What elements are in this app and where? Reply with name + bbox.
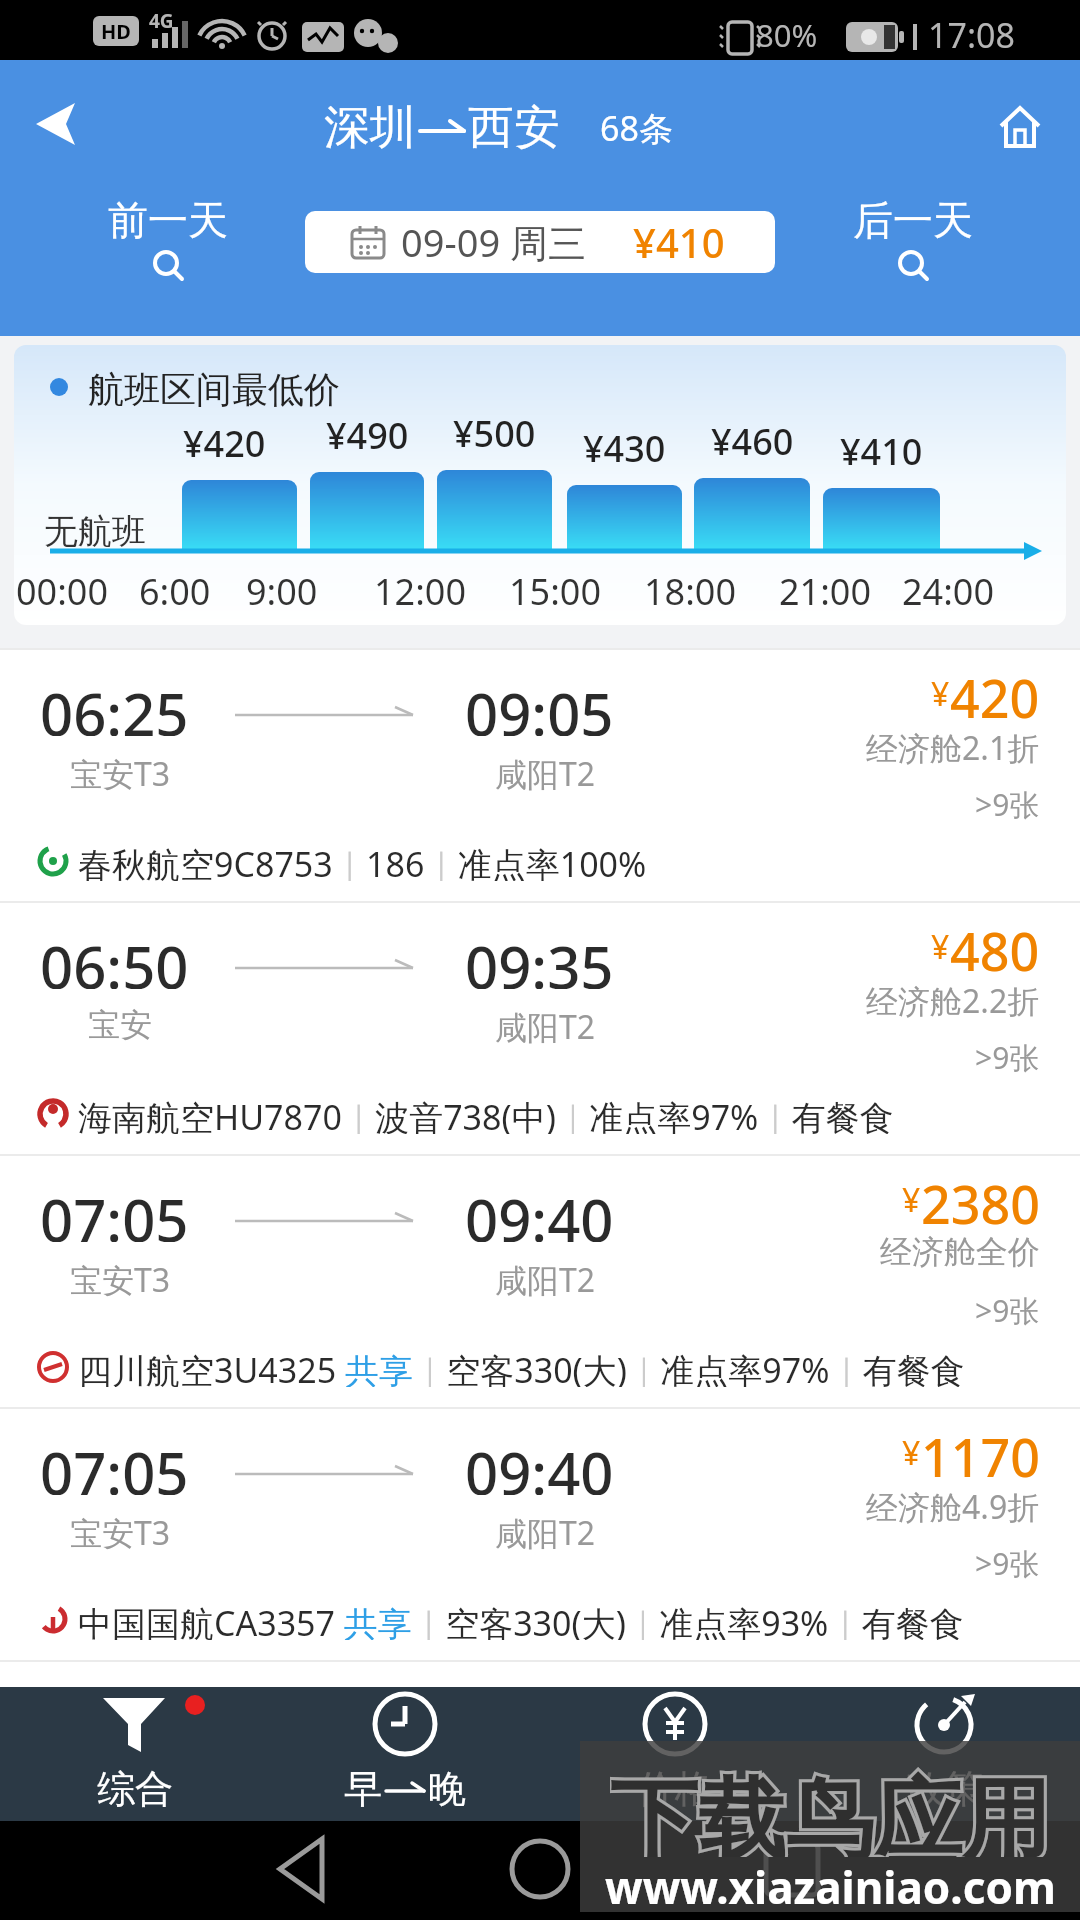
staticText: 咸阳T2 — [495, 1005, 596, 1045]
button[interactable]: 前一天 — [80, 195, 255, 305]
button[interactable] — [995, 100, 1055, 156]
staticText: 24:00 — [902, 567, 995, 607]
staticText: 春秋航空9C8753｜186｜准点率100% — [78, 841, 647, 881]
staticText: 价格 — [637, 1765, 713, 1811]
staticText: 中国国航CA3357 共享｜空客330(大)｜准点率93%｜有餐食 — [78, 1600, 964, 1640]
staticText: 深圳 — [324, 99, 416, 157]
staticText: 经济舱全价 — [880, 1232, 1040, 1272]
staticText: 咸阳T2 — [495, 752, 596, 792]
staticText: 9:00 — [246, 567, 318, 607]
staticText: 68条 — [600, 105, 673, 151]
staticText: ¥410 — [840, 427, 923, 467]
staticText: 宝安T3 — [70, 752, 171, 792]
staticText: 航班区间最低价 — [88, 367, 340, 407]
staticText: 07:05 — [40, 1180, 189, 1242]
button[interactable] — [24, 96, 84, 152]
staticText: 经济舱2.1折 — [866, 726, 1040, 766]
staticText: 06:50 — [40, 927, 189, 989]
staticText: 宝安 — [88, 1005, 152, 1045]
staticText: 经济舱4.9折 — [866, 1485, 1040, 1525]
staticText: >9张 — [975, 784, 1040, 824]
staticText: 09:40 — [465, 1180, 614, 1242]
button[interactable]: 06:25 — [0, 648, 1080, 901]
staticText: 咸阳T2 — [495, 1511, 596, 1551]
staticText: 宝安T3 — [70, 1511, 171, 1551]
staticText: ¥ — [902, 1178, 921, 1222]
staticText: 07:05 — [40, 1433, 189, 1495]
staticText: 1170 — [921, 1421, 1040, 1481]
staticText: 综合 — [97, 1765, 173, 1811]
staticText: 西安 — [468, 99, 560, 157]
staticText: 下载鸟应用 — [610, 1765, 1050, 1857]
staticText: ¥ — [902, 1431, 921, 1475]
staticText: ¥490 — [326, 411, 409, 451]
staticText: HD — [101, 18, 131, 45]
staticText: 政策 — [907, 1765, 983, 1811]
staticText: ¥420 — [183, 419, 266, 459]
staticText: ¥500 — [453, 409, 536, 449]
staticText: 06:25 — [40, 674, 189, 736]
staticText: 480 — [950, 915, 1040, 975]
staticText: 4G — [149, 8, 174, 32]
staticText: 6:00 — [139, 567, 211, 607]
staticText: www.xiazainiao.com — [605, 1857, 1056, 1909]
button[interactable]: 07:05 — [0, 1154, 1080, 1407]
staticText: 21:00 — [779, 567, 872, 607]
staticText: 15:00 — [509, 567, 602, 607]
staticText: 下载鸟应用 — [610, 1765, 1050, 1857]
staticText: 无航班 — [44, 510, 146, 550]
staticText: 前一天 — [108, 195, 228, 245]
button[interactable]: 后一天 — [825, 195, 1000, 305]
button[interactable]: 综合 — [0, 1687, 270, 1821]
staticText: 80% — [756, 14, 818, 50]
staticText: 18:00 — [644, 567, 737, 607]
staticText: ¥430 — [583, 424, 666, 464]
staticText: 晚 — [428, 1765, 466, 1811]
staticText: ¥ — [931, 672, 950, 716]
button[interactable]: 06:50 — [0, 901, 1080, 1154]
staticText: ¥ — [931, 925, 950, 969]
staticText: 后一天 — [853, 195, 973, 245]
staticText: >9张 — [975, 1037, 1040, 1077]
staticText: 12:00 — [374, 567, 467, 607]
staticText: 17:08 — [928, 12, 1015, 52]
staticText: 420 — [950, 662, 1040, 722]
button[interactable]: 07:05 — [0, 1407, 1080, 1660]
staticText: >9张 — [975, 1543, 1040, 1583]
button[interactable]: 09-09 周三 — [305, 211, 775, 273]
staticText: 海南航空HU7870｜波音738(中)｜准点率97%｜有餐食 — [78, 1094, 894, 1134]
staticText: ¥410 — [633, 215, 725, 269]
button[interactable]: 价格 — [540, 1687, 810, 1821]
staticText: 09:40 — [465, 1433, 614, 1495]
staticText: 四川航空3U4325 共享｜空客330(大)｜准点率97%｜有餐食 — [78, 1347, 965, 1387]
staticText: 早 — [344, 1765, 382, 1811]
staticText: >9张 — [975, 1290, 1040, 1330]
button[interactable]: 政策 — [810, 1687, 1080, 1821]
staticText: 宝安T3 — [70, 1258, 171, 1298]
staticText: 2380 — [921, 1168, 1040, 1228]
staticText: 09:35 — [465, 927, 614, 989]
staticText: 经济舱2.2折 — [866, 979, 1040, 1019]
staticText: 09:05 — [465, 674, 614, 736]
staticText: ¥460 — [711, 417, 794, 457]
staticText: 咸阳T2 — [495, 1258, 596, 1298]
button[interactable]: 早 — [270, 1687, 540, 1821]
staticText: 09-09 周三 — [401, 216, 587, 268]
staticText: 00:00 — [16, 567, 109, 607]
